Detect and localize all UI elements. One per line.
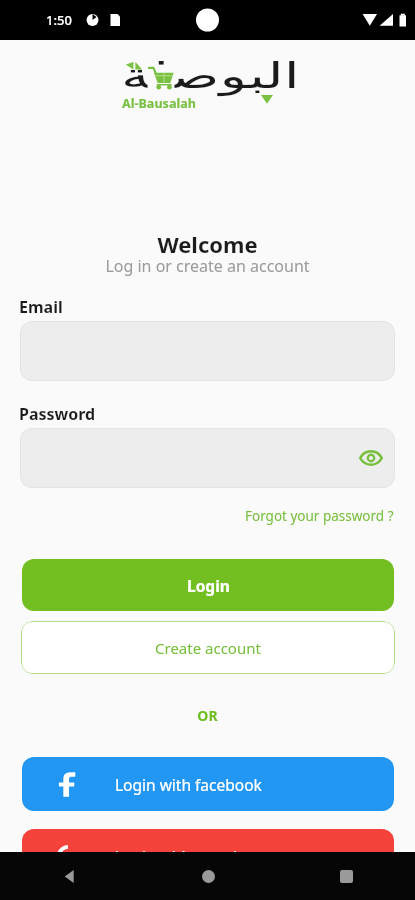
button[interactable]: Back [0,852,139,900]
button[interactable]: Forgot your password ? [245,507,394,525]
staticText: Password [19,403,96,425]
button[interactable]: Show password [356,443,386,473]
staticText: Email [19,296,63,318]
staticText: Login with google [115,846,246,867]
staticText: 1:50 [46,11,72,29]
staticText: Login with facebook [115,774,262,795]
button[interactable]: Recent apps [277,852,415,900]
staticText: Create account [155,638,261,658]
staticText: Log in or create an account [0,255,415,277]
button[interactable]: Home [139,852,277,900]
staticText: البوصلة [121,56,301,97]
button[interactable]: Create account [21,621,395,674]
other: Al-Bausalah [121,50,296,112]
button[interactable]: Show password [20,428,395,488]
staticText: Al-Bausalah [122,95,196,112]
button[interactable]: Login with facebook [22,757,394,811]
staticText: Login [187,575,230,596]
staticText: OR [0,706,415,725]
button[interactable]: Login with google [22,829,394,883]
button[interactable]: Login [22,559,394,611]
staticText: Welcome [0,229,415,259]
